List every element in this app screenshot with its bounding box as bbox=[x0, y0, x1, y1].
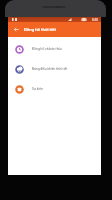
staticText: Sự kiện bbox=[32, 87, 43, 91]
button[interactable]: Sự kiện bbox=[8, 79, 101, 99]
staticText: 40% bbox=[81, 18, 87, 22]
button[interactable]: Back bbox=[8, 22, 24, 37]
staticText: Đồng hồ thời tiết bbox=[24, 27, 56, 32]
staticText: Đồng hồ và báo thức bbox=[32, 47, 63, 51]
staticText: Bảng điều khiển thời tiết bbox=[32, 67, 68, 71]
button[interactable]: Bảng điều khiển thời tiết bbox=[8, 59, 101, 79]
button[interactable]: Đồng hồ và báo thức bbox=[8, 39, 101, 59]
staticText: 8:30 bbox=[92, 18, 99, 22]
